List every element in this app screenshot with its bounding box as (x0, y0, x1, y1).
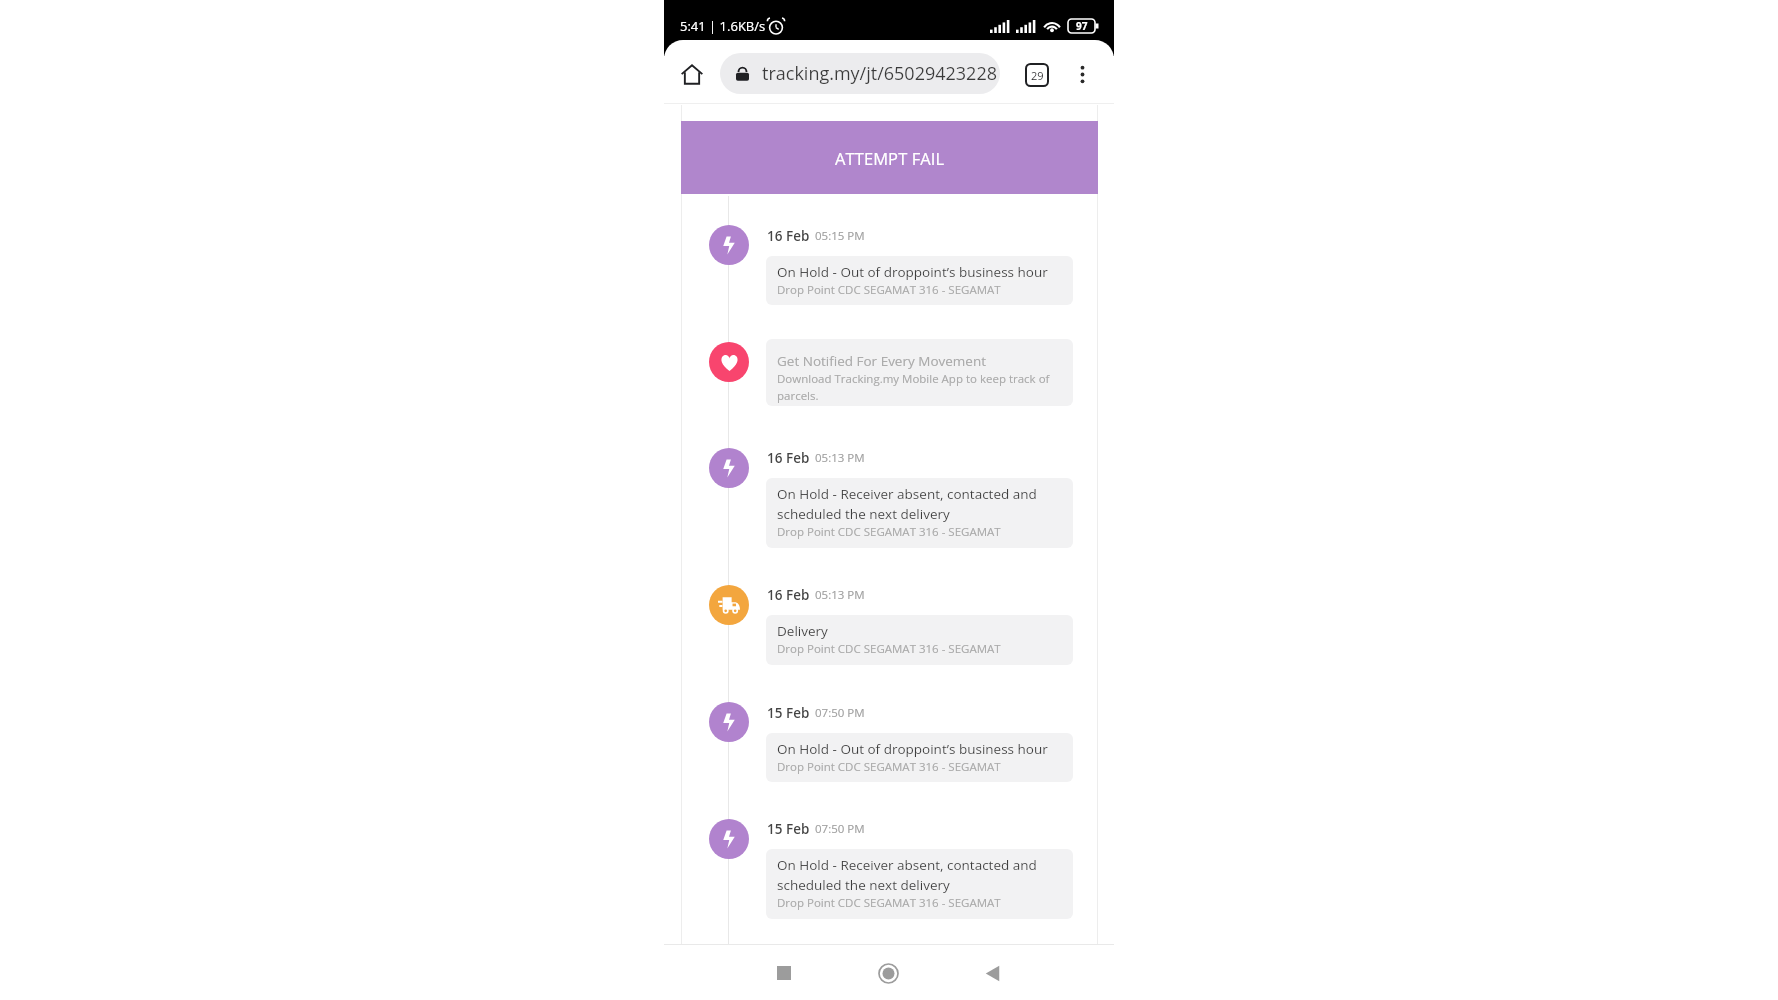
staticText: 5:41 | 1.6KB/s (680, 17, 766, 35)
staticText: 05:15 PM (815, 228, 865, 244)
button[interactable]: On Hold - Receiver absent, contacted and… (766, 849, 1073, 919)
staticText: 97 (1076, 19, 1088, 33)
staticText: 05:13 PM (815, 587, 865, 603)
staticText: 15 Feb (767, 820, 810, 838)
staticText: On Hold - Out of droppoint’s business ho… (777, 263, 1048, 281)
staticText: On Hold - Receiver absent, contacted and… (777, 856, 1065, 894)
staticText: 05:13 PM (815, 450, 865, 466)
staticText: 15 Feb (767, 704, 810, 722)
staticText: Drop Point CDC SEGAMAT 316 - SEGAMAT (777, 759, 1001, 775)
staticText: Get Notified For Every Movement (777, 352, 986, 370)
staticText: ATTEMPT FAIL (835, 147, 945, 169)
button[interactable]: Home (673, 56, 710, 93)
staticText: 29 (1031, 68, 1044, 83)
staticText: 16 Feb (767, 227, 810, 245)
button[interactable]: Recents (761, 950, 807, 996)
staticText: On Hold - Out of droppoint’s business ho… (777, 740, 1048, 758)
button[interactable]: Delivery (766, 615, 1073, 665)
button[interactable]: On Hold - Receiver absent, contacted and… (766, 478, 1073, 548)
staticText: 07:50 PM (815, 705, 865, 721)
staticText: 16 Feb (767, 449, 810, 467)
staticText: Drop Point CDC SEGAMAT 316 - SEGAMAT (777, 524, 1001, 540)
button[interactable]: Back (969, 950, 1015, 996)
button[interactable]: Home (865, 950, 911, 996)
button[interactable]: On Hold - Out of droppoint’s business ho… (766, 733, 1073, 782)
staticText: Drop Point CDC SEGAMAT 316 - SEGAMAT (777, 282, 1001, 298)
staticText: Drop Point CDC SEGAMAT 316 - SEGAMAT (777, 641, 1001, 657)
button[interactable]: Get Notified For Every Movement (766, 339, 1073, 406)
staticText: 16 Feb (767, 586, 810, 604)
staticText: tracking.my/jt/65029423228 (762, 61, 997, 86)
staticText: Drop Point CDC SEGAMAT 316 - SEGAMAT (777, 895, 1001, 911)
staticText: Download Tracking.my Mobile App to keep … (777, 371, 1065, 403)
button[interactable]: ATTEMPT FAIL (681, 121, 1098, 194)
button[interactable]: tracking.my/jt/65029423228 (720, 53, 1000, 94)
button[interactable]: On Hold - Out of droppoint’s business ho… (766, 256, 1073, 305)
staticText: On Hold - Receiver absent, contacted and… (777, 485, 1065, 523)
button[interactable]: Tabs (1020, 58, 1053, 91)
staticText: 07:50 PM (815, 821, 865, 837)
staticText: Delivery (777, 622, 828, 640)
button[interactable]: More options (1068, 60, 1096, 88)
